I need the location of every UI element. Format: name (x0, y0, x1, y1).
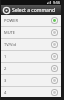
button[interactable]: 2 (0, 63, 64, 74)
button[interactable]: 4 (0, 87, 64, 98)
staticText: MUTE (4, 30, 15, 35)
staticText: 2 (4, 66, 7, 71)
staticText: 9:56 (53, 0, 60, 5)
button[interactable]: 3 (0, 75, 64, 86)
button[interactable]: 1 (0, 51, 64, 62)
staticText: 1 (4, 54, 7, 59)
staticText: 4 (4, 90, 7, 95)
staticText: Select a command (12, 7, 56, 14)
button[interactable]: POWER (0, 15, 64, 26)
staticText: POWER (4, 18, 18, 23)
button[interactable]: MUTE (0, 27, 64, 38)
button[interactable]: TV/Vid (0, 39, 64, 50)
staticText: 3 (4, 78, 7, 83)
staticText: TV/Vid (4, 42, 17, 47)
